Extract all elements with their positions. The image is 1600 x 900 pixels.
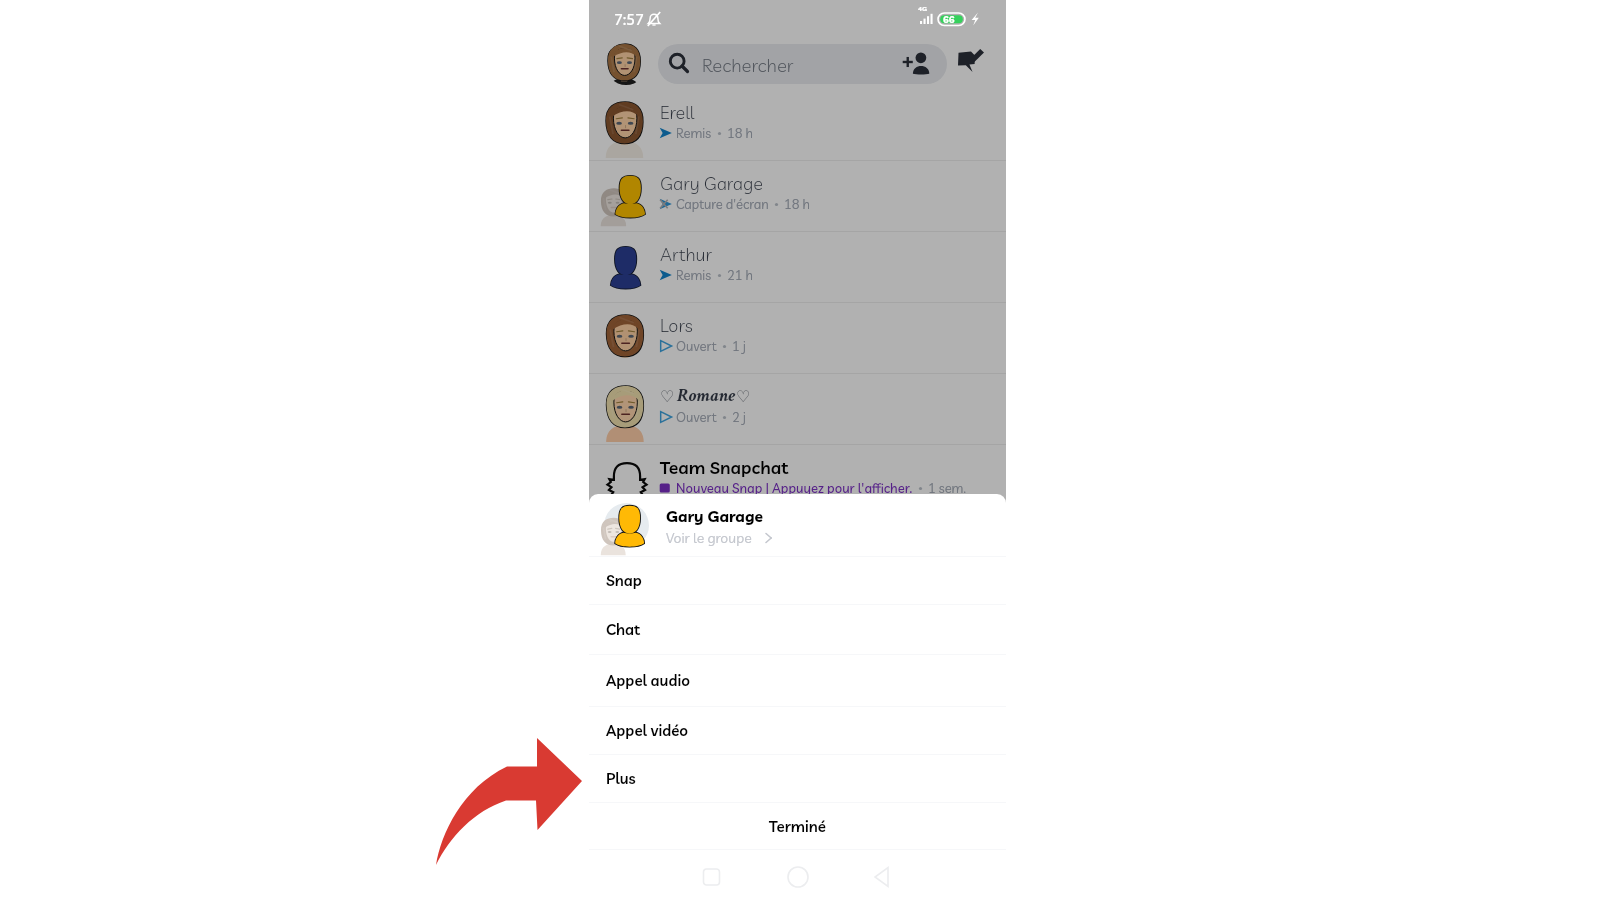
staticText: Remis (676, 267, 712, 283)
staticText: Erell (660, 101, 695, 124)
staticText: 18 h (784, 196, 810, 212)
button[interactable]: Snap (589, 557, 1006, 604)
button[interactable]: Gary Garage (589, 161, 1006, 231)
staticText: ♡ (660, 387, 675, 406)
staticText: 21 h (727, 267, 753, 283)
staticText: Gary Garage (660, 172, 763, 195)
button[interactable]: Add friend (902, 49, 930, 77)
staticText: Snap (606, 571, 642, 590)
staticText: Remis (676, 125, 712, 141)
staticText: Team Snapchat (660, 456, 789, 478)
staticText: 4G (918, 4, 927, 12)
staticText: Arthur (660, 243, 712, 266)
button[interactable]: Profile (605, 43, 647, 85)
button[interactable]: Recent apps (689, 862, 720, 893)
button[interactable]: Gary Garage (589, 494, 1006, 556)
button[interactable]: Team Snapchat (589, 445, 1006, 515)
staticText: 18 h (727, 125, 753, 141)
staticText: Chat (606, 620, 641, 639)
button[interactable]: Terminé (589, 803, 1006, 849)
button[interactable]: Arthur (589, 232, 1006, 302)
button[interactable]: Appel vidéo (589, 707, 1006, 754)
button[interactable]: Chat (589, 605, 1006, 654)
staticText: Gary Garage (666, 506, 764, 525)
staticText: 2 j (732, 409, 746, 425)
staticText: Capture d'écran (676, 196, 769, 212)
button[interactable]: Erell (589, 90, 1006, 160)
staticText: 1 sem. (928, 480, 966, 496)
button[interactable]: Home (783, 862, 814, 893)
staticText: Nouveau Snap | Appuyez pour l'afficher. (676, 480, 913, 496)
button[interactable]: Back (867, 862, 898, 893)
button[interactable]: Appel audio (589, 655, 1006, 706)
button[interactable]: Rechercher (658, 44, 947, 84)
staticText: Rechercher (702, 53, 794, 76)
staticText: 66 (943, 13, 955, 25)
staticText: Voir le groupe (666, 529, 752, 547)
staticText: Appel vidéo (606, 721, 689, 740)
button[interactable]: ♡ (589, 374, 1006, 444)
staticText: Terminé (769, 817, 826, 836)
staticText: Appel audio (606, 671, 691, 690)
button[interactable]: Plus (589, 755, 1006, 802)
button[interactable]: Lors (589, 303, 1006, 373)
staticText: 7:57 (614, 10, 645, 29)
staticText: Ouvert (676, 338, 717, 354)
staticText: 1 j (732, 338, 746, 354)
staticText: Lors (660, 314, 693, 337)
staticText: Ouvert (676, 409, 717, 425)
staticText: Plus (606, 769, 636, 788)
staticText: Romane (677, 383, 736, 408)
staticText: ♡ (736, 387, 751, 406)
button[interactable]: New chat (958, 49, 984, 75)
